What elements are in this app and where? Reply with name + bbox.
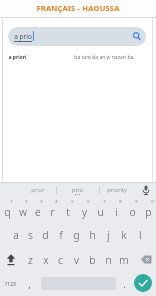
button[interactable]: s: [23, 223, 38, 246]
staticText: FRANÇAIS - HAOUSSA: [36, 3, 120, 13]
staticText: 0: [151, 199, 154, 204]
staticText: b: [89, 253, 96, 267]
button[interactable]: priority: [97, 183, 137, 197]
button[interactable]: FRANÇAIS - HAOUSSA: [0, 0, 156, 17]
button[interactable]: 8: [108, 199, 124, 222]
staticText: p: [145, 205, 152, 219]
button[interactable]: h: [84, 223, 100, 246]
button[interactable]: [135, 248, 156, 271]
staticText: 9: [135, 199, 138, 204]
button[interactable]: a priori: [3, 50, 153, 64]
staticText: s: [28, 228, 33, 242]
staticText: prior: [31, 186, 45, 194]
staticText: ?123: [5, 281, 16, 288]
button[interactable]: l: [132, 223, 148, 246]
button[interactable]: prio: [57, 183, 97, 197]
staticText: t: [66, 205, 70, 219]
staticText: a priori: [8, 54, 27, 61]
staticText: u: [97, 205, 104, 219]
staticText: m: [119, 253, 129, 267]
button[interactable]: c: [53, 248, 68, 271]
button[interactable]: v: [68, 248, 84, 271]
staticText: y: [82, 205, 87, 219]
staticText: 4: [55, 199, 58, 204]
staticText: e: [35, 205, 41, 219]
button[interactable]: 5: [60, 199, 76, 222]
button[interactable]: 9: [124, 199, 140, 222]
button[interactable]: 3: [30, 199, 45, 222]
button[interactable]: a prio: [8, 27, 146, 46]
staticText: l: [139, 228, 142, 242]
button[interactable]: [0, 248, 23, 271]
button[interactable]: z: [23, 248, 38, 271]
staticText: 8: [119, 199, 122, 204]
button[interactable]: j: [100, 223, 116, 246]
staticText: i: [115, 205, 118, 219]
staticText: k: [121, 228, 127, 242]
staticText: d: [42, 228, 49, 242]
button[interactable]: 6: [76, 199, 92, 222]
button[interactable]: m: [116, 248, 132, 271]
staticText: q: [4, 205, 11, 219]
staticText: f: [59, 228, 63, 242]
button[interactable]: [139, 183, 153, 197]
staticText: x: [43, 253, 49, 267]
button[interactable]: f: [53, 223, 68, 246]
staticText: h: [89, 228, 96, 242]
staticText: j: [107, 228, 110, 242]
staticText: r: [50, 205, 55, 219]
staticText: a: [13, 228, 19, 242]
button[interactable]: 0: [140, 199, 156, 222]
staticText: v: [74, 253, 79, 267]
button[interactable]: g: [68, 223, 84, 246]
staticText: o: [129, 205, 136, 219]
staticText: c: [58, 253, 63, 267]
button[interactable]: x: [38, 248, 53, 271]
staticText: 3: [40, 199, 43, 204]
button[interactable]: a: [8, 223, 23, 246]
button[interactable]: 2: [15, 199, 30, 222]
staticText: ba tare da an yi nazari ba.: [74, 54, 135, 61]
staticText: z: [28, 253, 33, 267]
staticText: g: [73, 228, 80, 242]
staticText: 6: [87, 199, 90, 204]
button[interactable]: .: [118, 273, 130, 296]
staticText: 1: [10, 199, 13, 204]
button[interactable]: ,: [24, 273, 34, 296]
button[interactable]: 7: [92, 199, 108, 222]
button[interactable]: 4: [45, 199, 60, 222]
staticText: w: [19, 205, 27, 219]
staticText: .: [123, 279, 126, 290]
button[interactable]: n: [100, 248, 116, 271]
staticText: prio: [72, 186, 83, 194]
button[interactable]: k: [116, 223, 132, 246]
button[interactable]: 1: [0, 199, 15, 222]
staticText: priority: [107, 186, 127, 194]
button[interactable]: [134, 274, 152, 292]
staticText: 2: [25, 199, 28, 204]
button[interactable]: b: [84, 248, 100, 271]
staticText: 7: [103, 199, 106, 204]
staticText: a prio: [14, 32, 32, 41]
button[interactable]: ?123: [0, 273, 21, 296]
staticText: n: [105, 253, 112, 267]
staticText: 5: [71, 199, 74, 204]
button[interactable]: d: [38, 223, 53, 246]
staticText: ,: [28, 279, 31, 290]
button[interactable]: prior: [16, 183, 60, 197]
